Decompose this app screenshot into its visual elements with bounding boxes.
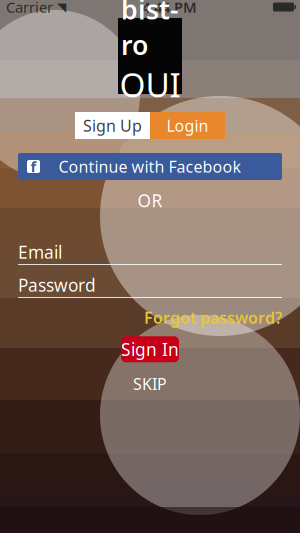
staticText: Forgot password?: [144, 307, 282, 328]
staticText: [53, 0, 57, 17]
staticText: ◥: [57, 0, 66, 14]
button[interactable]: Continue with Facebook: [18, 153, 282, 180]
staticText: Sign Up: [83, 115, 142, 136]
staticText: f: [30, 157, 36, 176]
staticText: 4:44 PM: [142, 0, 197, 17]
button[interactable]: Login: [150, 112, 225, 139]
staticText: bistro: [121, 0, 179, 62]
staticText: Carrier: [6, 0, 53, 17]
staticText: Sign In: [121, 338, 179, 361]
staticText: SKIP: [133, 373, 167, 394]
staticText: OUI: [119, 62, 180, 106]
button[interactable]: SKIP: [123, 370, 177, 397]
staticText: Email: [18, 240, 62, 263]
staticText: Login: [166, 115, 208, 136]
staticText: café · lounge · bistro: [124, 114, 175, 122]
staticText: OR: [137, 189, 162, 212]
button[interactable]: Sign Up: [75, 112, 150, 139]
button[interactable]: Forgot password?: [144, 304, 282, 331]
staticText: Continue with Facebook: [58, 156, 241, 177]
staticText: Password: [18, 273, 96, 296]
button[interactable]: Sign In: [121, 336, 179, 362]
